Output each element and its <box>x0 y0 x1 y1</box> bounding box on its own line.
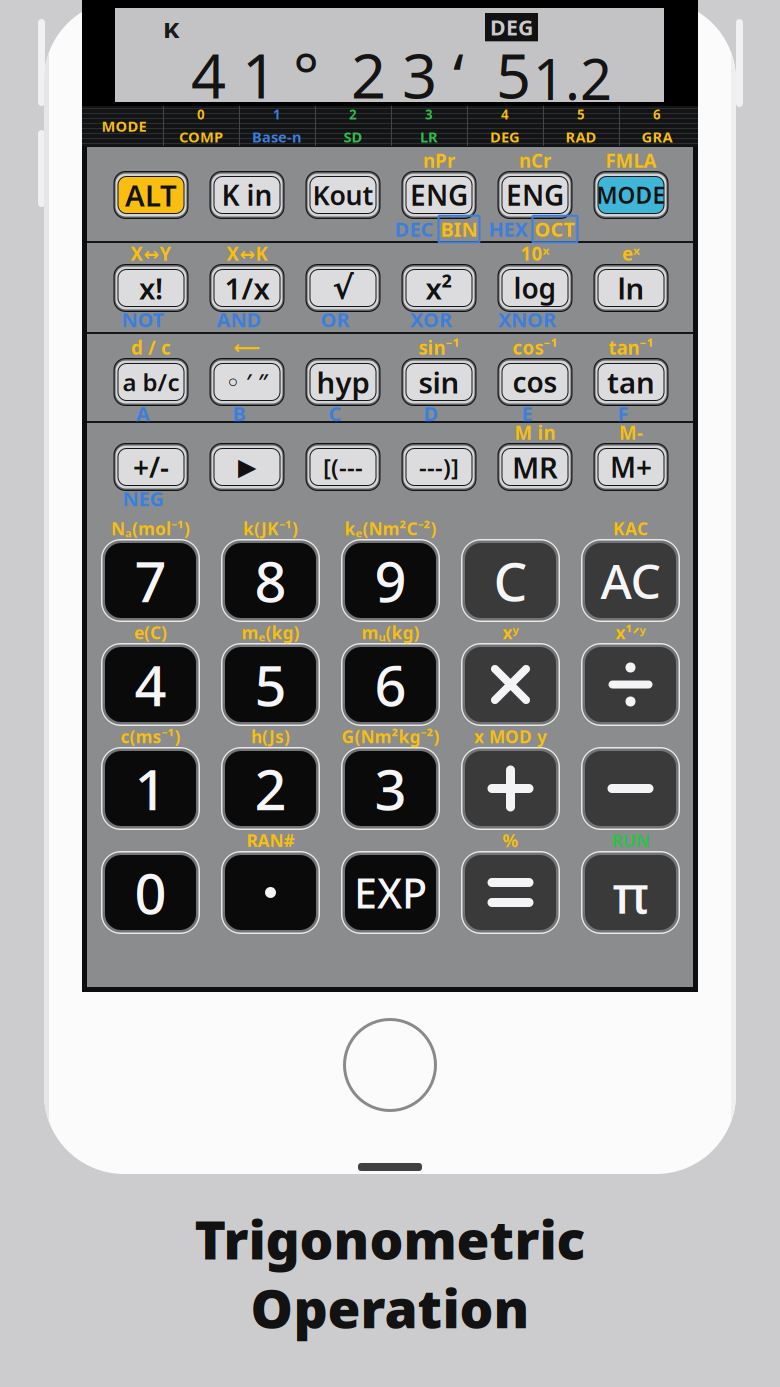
button[interactable] <box>461 747 560 830</box>
staticText: G(Nm²kg⁻²) <box>341 725 439 748</box>
button[interactable]: √ <box>305 264 380 312</box>
staticText: X↔K <box>226 241 267 266</box>
staticText: cos <box>512 363 557 401</box>
button[interactable]: tan <box>593 358 668 406</box>
staticText: 0 <box>197 105 205 123</box>
button[interactable]: 3 <box>341 747 440 830</box>
button[interactable]: cos <box>497 358 572 406</box>
button[interactable]: 0 <box>101 851 200 934</box>
staticText: DEC <box>394 216 433 242</box>
staticText: 5 <box>254 647 286 722</box>
staticText: eˣ <box>622 241 640 266</box>
staticText: EXP <box>354 865 427 920</box>
button[interactable]: 9 <box>341 539 440 622</box>
staticText: mᵤ(kg) <box>361 621 419 644</box>
staticText: K in <box>221 176 272 214</box>
button[interactable]: 5 <box>221 643 320 726</box>
staticText: 8 <box>254 543 286 618</box>
staticText: sin <box>418 362 459 401</box>
button[interactable] <box>461 643 560 726</box>
staticText: X↔Y <box>130 241 171 266</box>
staticText: x MOD y <box>474 725 547 748</box>
button[interactable]: ENG <box>497 171 572 219</box>
staticText: √ <box>332 270 353 306</box>
button[interactable]: log <box>497 264 572 312</box>
staticText: 6 <box>653 105 661 123</box>
staticText: Nₐ(mol⁻¹) <box>111 517 190 540</box>
button[interactable]: MR <box>497 443 572 491</box>
staticText: AND <box>216 306 261 333</box>
staticText: κ <box>163 10 180 45</box>
staticText: ---)] <box>419 451 459 483</box>
button[interactable]: 4 <box>101 643 200 726</box>
staticText: XOR <box>410 306 452 333</box>
staticText: 1/x <box>224 268 269 307</box>
staticText: sin⁻¹ <box>418 335 459 360</box>
staticText: d / c <box>131 335 171 360</box>
staticText: 1 <box>273 105 281 123</box>
button[interactable]: ▶ <box>209 443 284 491</box>
button[interactable]: 1/x <box>209 264 284 312</box>
staticText: C <box>328 400 341 427</box>
staticText: ⟵ <box>233 337 260 358</box>
button[interactable] <box>461 851 560 934</box>
staticText: B <box>232 400 245 427</box>
button[interactable]: 2 <box>221 747 320 830</box>
staticText: 3 <box>425 105 433 123</box>
staticText: DEG <box>490 127 520 147</box>
button[interactable]: 8 <box>221 539 320 622</box>
staticText: BIN <box>440 216 477 242</box>
staticText: F <box>617 400 628 427</box>
button[interactable]: hyp <box>305 358 380 406</box>
staticText: NOT <box>121 306 164 333</box>
button[interactable]: C <box>461 539 560 622</box>
staticText: LR <box>420 127 438 147</box>
staticText: RAN# <box>246 829 294 852</box>
staticText: x! <box>139 268 163 307</box>
button[interactable]: ◦ ′ ″ <box>209 358 284 406</box>
button[interactable]: K in <box>209 171 284 219</box>
button[interactable]: x! <box>113 264 188 312</box>
button[interactable]: x² <box>401 264 476 312</box>
staticText: OR <box>320 306 349 333</box>
staticText: kₑ(Nm²C⁻²) <box>344 517 436 540</box>
staticText: 5 <box>577 105 585 123</box>
button[interactable]: 1 <box>101 747 200 830</box>
button[interactable]: ln <box>593 264 668 312</box>
button[interactable]: MODE <box>593 171 668 219</box>
staticText: XNOR <box>498 306 556 333</box>
button[interactable]: ENG <box>401 171 476 219</box>
button[interactable] <box>581 747 680 830</box>
button[interactable]: π <box>581 851 680 934</box>
staticText: ENG <box>410 176 468 214</box>
button[interactable]: AC <box>581 539 680 622</box>
button[interactable]: 7 <box>101 539 200 622</box>
staticText: SD <box>343 127 362 147</box>
button[interactable]: ALT <box>113 171 188 219</box>
staticText: mₑ(kg) <box>241 621 299 644</box>
staticText: AC <box>600 549 660 612</box>
staticText: tan <box>607 362 655 401</box>
button[interactable]: 6 <box>341 643 440 726</box>
button[interactable]: M+ <box>593 443 668 491</box>
button[interactable] <box>221 851 320 934</box>
button[interactable]: a b/c <box>113 358 188 406</box>
button[interactable]: sin <box>401 358 476 406</box>
staticText: 1.2 <box>533 41 612 115</box>
staticText: 2 <box>349 105 357 123</box>
staticText: ALT <box>125 175 177 214</box>
button[interactable] <box>581 643 680 726</box>
button[interactable]: Kout <box>305 171 380 219</box>
staticText: MODE <box>596 180 665 210</box>
button[interactable]: [(--- <box>305 443 380 491</box>
staticText: nPr <box>423 148 455 173</box>
staticText: hyp <box>316 362 369 401</box>
staticText: Base-n <box>252 127 302 147</box>
button[interactable]: EXP <box>341 851 440 934</box>
staticText: 0 <box>134 855 166 930</box>
staticText: ln <box>617 268 644 307</box>
button[interactable]: +/- <box>113 443 188 491</box>
button[interactable]: ---)] <box>401 443 476 491</box>
staticText: M+ <box>610 448 652 486</box>
staticText: DEG <box>490 13 533 41</box>
